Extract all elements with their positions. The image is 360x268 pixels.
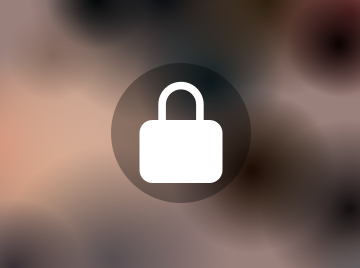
button[interactable]: Content locked (0, 0, 360, 268)
